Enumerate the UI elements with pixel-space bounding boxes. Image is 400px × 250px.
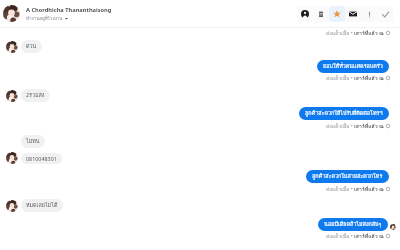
button[interactable]: ไม่ทน [21, 135, 45, 148]
button[interactable]: นอมมีเดียดถ้าไม่ส่งกลับๆ [318, 218, 388, 231]
staticText: หมดเลยไม่ได้ [26, 201, 58, 210]
button[interactable]: Favourite [329, 6, 345, 22]
staticText: ทำงานอยู่ที่โรงงาน [26, 15, 63, 22]
button[interactable]: ยอมให้ทั่วคนแค่ครอบครัว [317, 60, 389, 73]
button[interactable]: Profile [297, 6, 313, 22]
button[interactable]: A Chordhicha Thananthaisong [3, 5, 112, 22]
staticText: ส่งแล้วเมื่อ • เสาร์ที่แล้ว ณ [326, 232, 384, 240]
staticText: ยอมให้ทั่วคนแค่ครอบครัว [323, 62, 383, 71]
staticText: ลูกค้าสะดวกในสายสะดวกโทร [312, 172, 383, 181]
staticText: A Chordhicha Thananthaisong [26, 6, 112, 14]
button[interactable]: 2ร่วมส่ง [21, 89, 50, 102]
button[interactable]: Done [377, 6, 393, 22]
staticText: ไม่ทน [26, 137, 40, 146]
staticText: 0810048301 [26, 155, 57, 162]
button[interactable]: ด่วน [21, 40, 42, 53]
staticText: ส่งแล้วเมื่อ • เสาร์ที่แล้ว ณ [326, 122, 384, 130]
button[interactable]: ลูกค้าสะดวกให้ไปรับที่ติดต่อโทรฯ [299, 107, 389, 120]
button[interactable]: ลูกค้าสะดวกในสายสะดวกโทร [306, 170, 389, 183]
staticText: ลูกค้าสะดวกให้ไปรับที่ติดต่อโทรฯ [305, 109, 383, 118]
staticText: ส่งแล้วเมื่อ • เสาร์ที่แล้ว ณ [326, 74, 384, 82]
staticText: 2ร่วมส่ง [26, 91, 45, 100]
staticText: ด่วน [26, 42, 37, 51]
button[interactable]: หมดเลยไม่ได้ [21, 199, 63, 212]
staticText: ส่งแล้วเมื่อ • เสาร์ที่แล้ว ณ [326, 29, 384, 37]
staticText: ส่งแล้วเมื่อ • เสาร์ที่แล้ว ณ [326, 185, 384, 193]
button[interactable]: Mark unread [345, 6, 361, 22]
button[interactable]: Delete [313, 6, 329, 22]
button[interactable]: 0810048301 [21, 153, 62, 164]
staticText: นอมมีเดียดถ้าไม่ส่งกลับๆ [324, 220, 382, 229]
button[interactable]: Report [361, 6, 377, 22]
